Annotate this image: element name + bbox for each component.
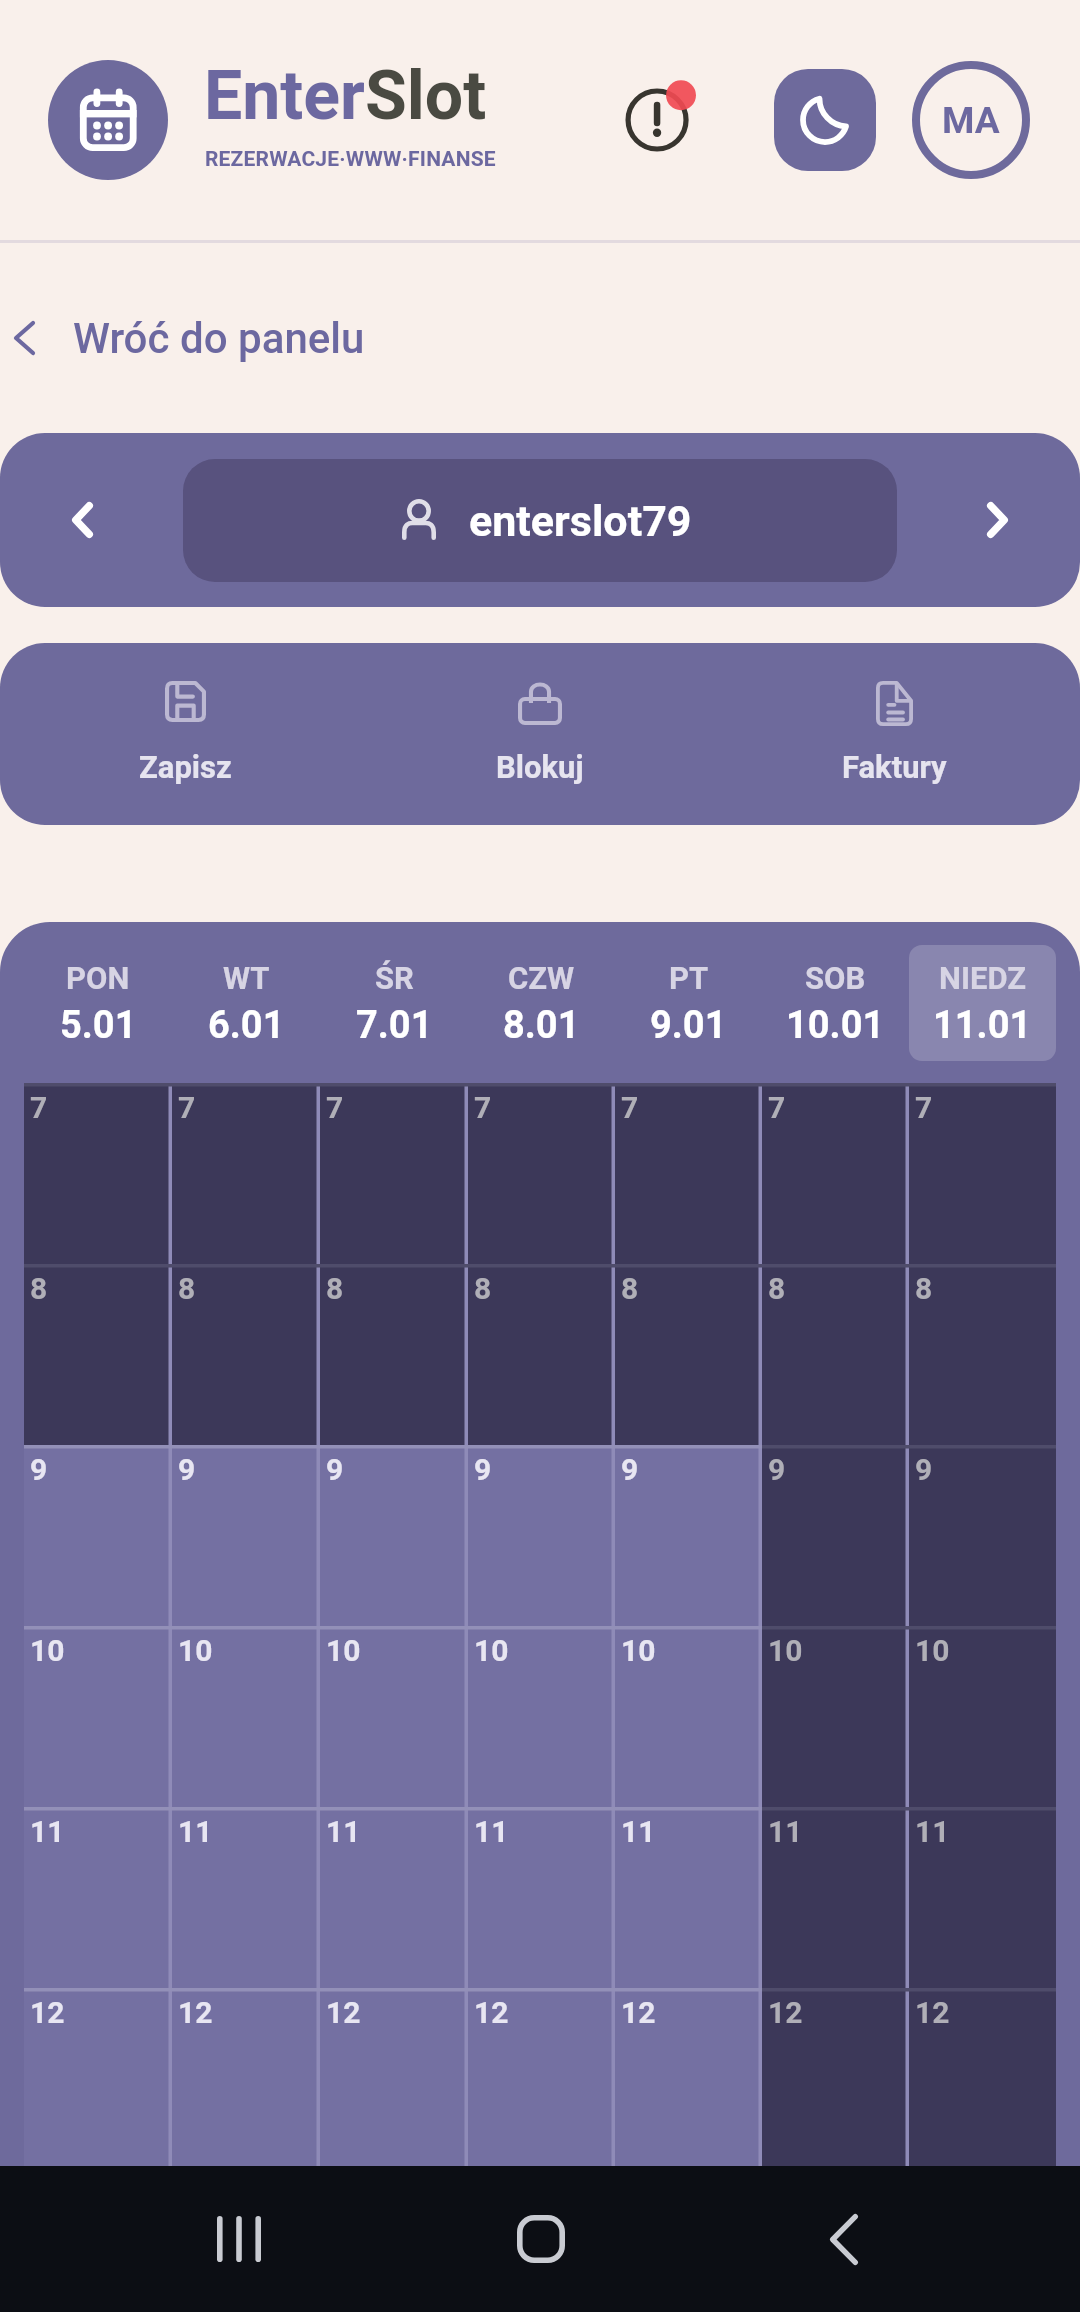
staticText: 11 — [30, 1814, 65, 1849]
button[interactable]: MA — [912, 61, 1030, 179]
button[interactable]: 10 — [320, 1626, 468, 1807]
button[interactable]: 8 — [320, 1264, 468, 1445]
button[interactable]: 7 — [24, 1083, 172, 1264]
button[interactable]: 10 — [615, 1626, 762, 1807]
button[interactable]: PON — [24, 945, 172, 1061]
button[interactable]: 8 — [615, 1264, 762, 1445]
staticText: enterslot79 — [469, 496, 692, 546]
staticText: 8.01 — [503, 1003, 580, 1048]
staticText: PON — [66, 960, 130, 996]
button[interactable]: 11 — [24, 1807, 172, 1988]
staticText: 8 — [474, 1271, 492, 1306]
button[interactable]: SOB — [762, 945, 909, 1061]
staticText: 12 — [30, 1995, 65, 2030]
staticText: 10 — [326, 1633, 361, 1668]
button[interactable]: 7 — [320, 1083, 468, 1264]
button[interactable]: EnterSlot — [48, 60, 168, 180]
staticText: 12 — [621, 1995, 656, 2030]
button[interactable]: 12 — [762, 1988, 909, 2169]
button[interactable]: Faktury — [717, 643, 1072, 825]
button[interactable]: 10 — [24, 1626, 172, 1807]
staticText: 9 — [621, 1452, 639, 1487]
button[interactable]: Home — [461, 2166, 621, 2312]
button[interactable]: 7 — [615, 1083, 762, 1264]
button[interactable]: 9 — [320, 1445, 468, 1626]
staticText: 12 — [768, 1995, 803, 2030]
button[interactable]: 11 — [172, 1807, 320, 1988]
staticText: MA — [942, 99, 1000, 142]
button[interactable]: 9 — [762, 1445, 909, 1626]
button[interactable]: Blokuj — [362, 643, 717, 825]
staticText: 12 — [178, 1995, 213, 2030]
button[interactable]: 12 — [172, 1988, 320, 2169]
button[interactable]: Wróć do panelu — [0, 243, 1080, 433]
button[interactable]: PT — [615, 945, 762, 1061]
button[interactable]: 10 — [172, 1626, 320, 1807]
staticText: REZERWACJE·WWW·FINANSE — [205, 147, 496, 172]
staticText: 7 — [326, 1090, 344, 1125]
staticText: Wróć do panelu — [73, 314, 365, 363]
button[interactable]: 8 — [762, 1264, 909, 1445]
button[interactable]: 8 — [172, 1264, 320, 1445]
staticText: 11 — [915, 1814, 950, 1849]
button[interactable]: 7 — [909, 1083, 1056, 1264]
button[interactable]: 8 — [909, 1264, 1056, 1445]
button[interactable]: Zapisz — [8, 643, 362, 825]
staticText: 12 — [326, 1995, 361, 2030]
button[interactable]: 9 — [468, 1445, 615, 1626]
staticText: 11 — [621, 1814, 656, 1849]
staticText: 10 — [768, 1633, 803, 1668]
staticText: 9 — [768, 1452, 786, 1487]
staticText: 9 — [326, 1452, 344, 1487]
staticText: 11.01 — [933, 1003, 1032, 1048]
button[interactable]: 10 — [468, 1626, 615, 1807]
button[interactable]: Toggle dark mode — [774, 69, 876, 171]
staticText: ŚR — [375, 960, 414, 996]
button[interactable]: 11 — [468, 1807, 615, 1988]
staticText: 6.01 — [208, 1003, 285, 1048]
button[interactable]: 12 — [468, 1988, 615, 2169]
button[interactable]: 11 — [909, 1807, 1056, 1988]
button[interactable]: 12 — [320, 1988, 468, 2169]
button[interactable]: ŚR — [320, 945, 468, 1061]
button[interactable]: 12 — [24, 1988, 172, 2169]
button[interactable]: 8 — [24, 1264, 172, 1445]
staticText: 12 — [915, 1995, 950, 2030]
button[interactable]: NIEDZ — [909, 945, 1056, 1061]
staticText: Blokuj — [496, 749, 584, 785]
staticText: 9 — [915, 1452, 933, 1487]
button[interactable]: 9 — [909, 1445, 1056, 1626]
button[interactable]: WT — [172, 945, 320, 1061]
staticText: 7 — [621, 1090, 639, 1125]
button[interactable]: 7 — [172, 1083, 320, 1264]
staticText: 11 — [474, 1814, 509, 1849]
button[interactable]: 10 — [909, 1626, 1056, 1807]
button[interactable]: 9 — [615, 1445, 762, 1626]
button[interactable]: Next user — [915, 433, 1080, 607]
staticText: 9.01 — [650, 1003, 727, 1048]
button[interactable]: 7 — [762, 1083, 909, 1264]
button[interactable]: Alerts — [618, 78, 702, 162]
button[interactable]: CZW — [468, 945, 615, 1061]
button[interactable]: 9 — [172, 1445, 320, 1626]
staticText: 5.01 — [60, 1003, 137, 1048]
button[interactable]: 11 — [615, 1807, 762, 1988]
staticText: PT — [669, 960, 709, 996]
button[interactable]: Back — [764, 2166, 924, 2312]
button[interactable]: 12 — [615, 1988, 762, 2169]
button[interactable]: 8 — [468, 1264, 615, 1445]
staticText: 10 — [178, 1633, 213, 1668]
button[interactable]: Recents — [159, 2166, 319, 2312]
button[interactable]: enterslot79 — [183, 459, 897, 582]
button[interactable]: 12 — [909, 1988, 1056, 2169]
button[interactable]: 11 — [762, 1807, 909, 1988]
staticText: SOB — [805, 960, 866, 996]
staticText: 8 — [915, 1271, 933, 1306]
staticText: NIEDZ — [939, 960, 1027, 996]
button[interactable]: 11 — [320, 1807, 468, 1988]
button[interactable]: 7 — [468, 1083, 615, 1264]
button[interactable]: Previous user — [0, 433, 165, 607]
button[interactable]: 10 — [762, 1626, 909, 1807]
staticText: 11 — [178, 1814, 213, 1849]
button[interactable]: 9 — [24, 1445, 172, 1626]
